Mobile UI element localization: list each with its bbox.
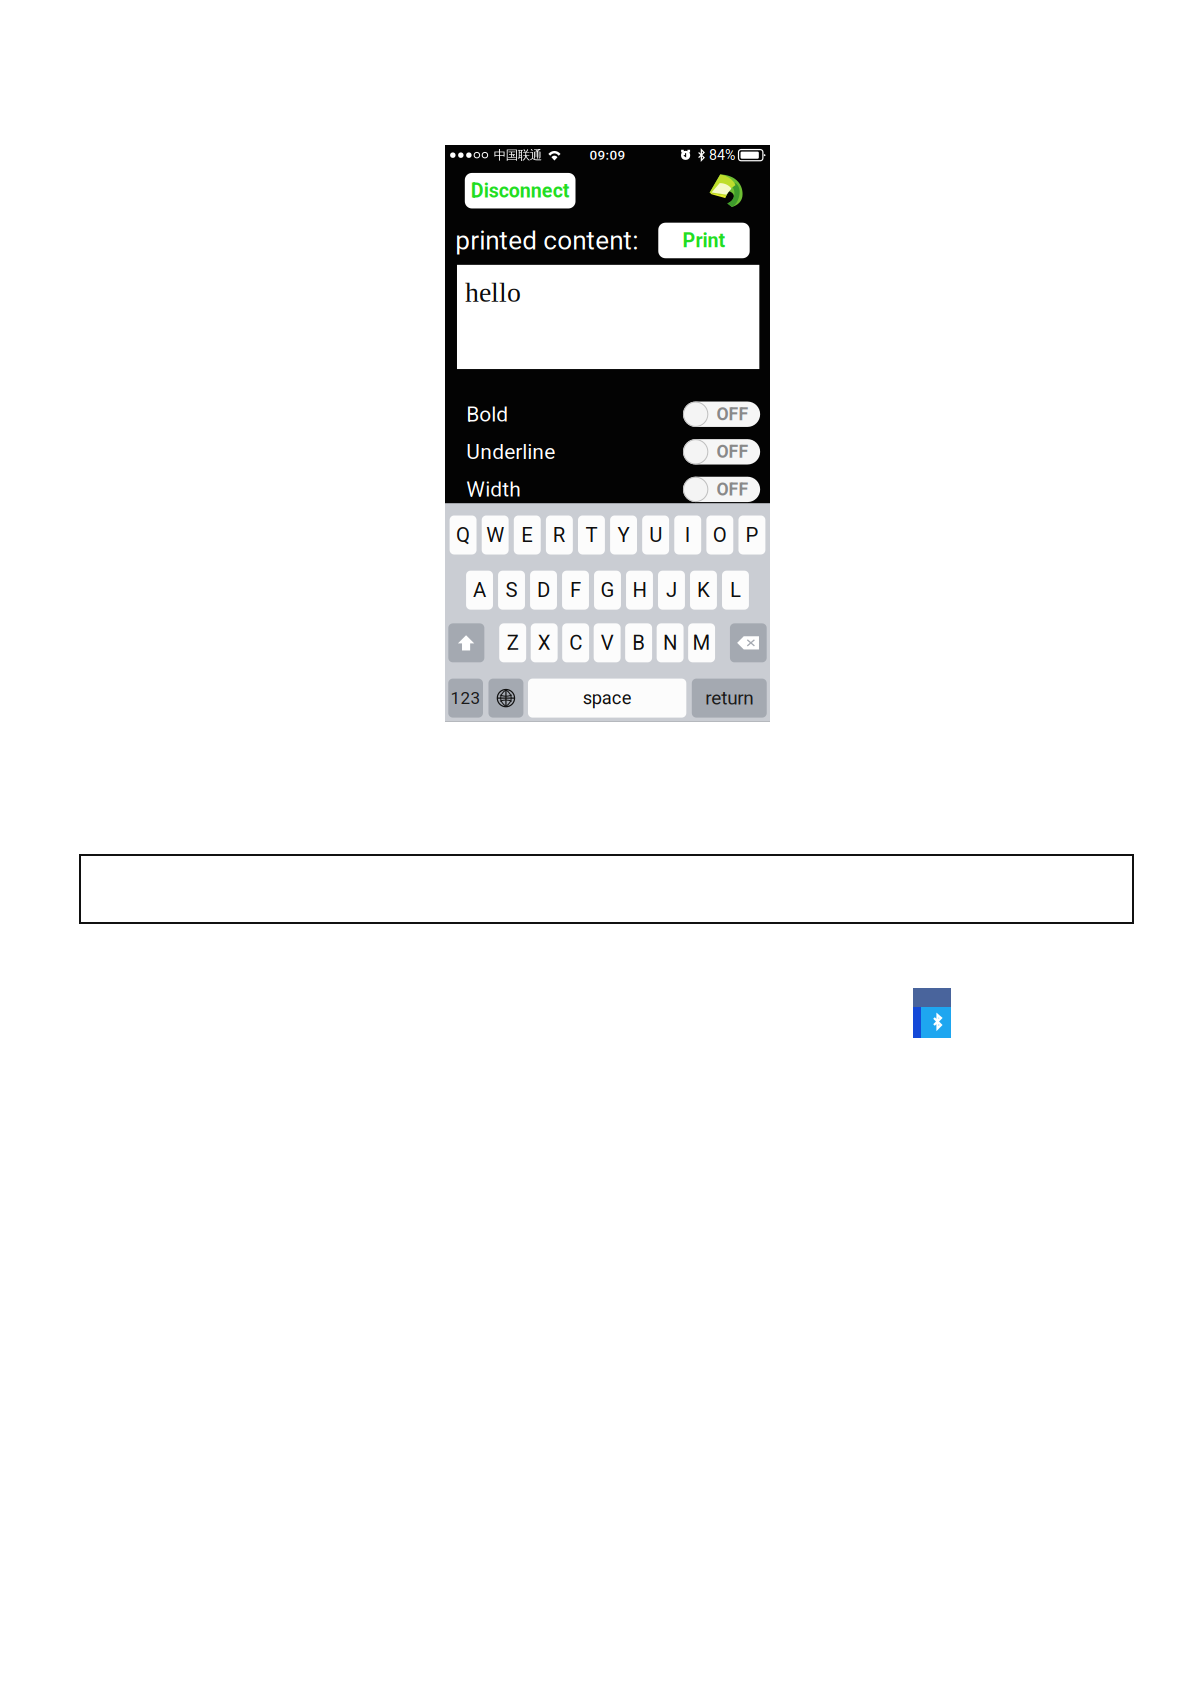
button[interactable]: V bbox=[594, 623, 621, 662]
button[interactable]: Off bbox=[683, 401, 760, 427]
staticText: I bbox=[685, 523, 691, 547]
button[interactable]: Delete bbox=[730, 623, 767, 662]
staticText: T bbox=[585, 523, 597, 547]
staticText: return bbox=[705, 687, 753, 709]
staticText: OFF bbox=[716, 441, 748, 462]
staticText: L bbox=[730, 578, 741, 602]
button[interactable]: W bbox=[482, 515, 509, 554]
staticText: N bbox=[663, 631, 677, 655]
staticText: W bbox=[486, 523, 504, 547]
button[interactable]: J bbox=[658, 571, 685, 610]
button[interactable]: Next keyboard bbox=[488, 679, 523, 718]
staticText: O bbox=[713, 523, 727, 547]
button[interactable]: 123 bbox=[448, 679, 483, 718]
button[interactable]: D bbox=[530, 571, 557, 610]
button[interactable]: space bbox=[528, 679, 686, 718]
button[interactable]: X bbox=[531, 623, 558, 662]
staticText: B bbox=[632, 631, 645, 655]
staticText: Underline bbox=[466, 439, 555, 464]
button[interactable]: O bbox=[706, 515, 733, 554]
staticText: F bbox=[570, 578, 581, 602]
staticText: Disconnect bbox=[471, 179, 570, 202]
staticText: X bbox=[538, 631, 551, 655]
staticText: J bbox=[666, 578, 677, 602]
staticText: Print bbox=[682, 229, 725, 252]
button[interactable]: Q bbox=[450, 515, 476, 554]
staticText: U bbox=[649, 523, 662, 547]
staticText: hello bbox=[465, 277, 521, 308]
button[interactable]: Z bbox=[499, 623, 526, 662]
button[interactable]: I bbox=[674, 515, 701, 554]
button[interactable]: Disconnect bbox=[465, 173, 575, 208]
button[interactable]: A bbox=[466, 571, 493, 610]
staticText: V bbox=[601, 631, 614, 655]
button[interactable]: E bbox=[514, 515, 541, 554]
button[interactable]: L bbox=[722, 571, 749, 610]
button[interactable]: S bbox=[498, 571, 525, 610]
button[interactable]: return bbox=[692, 679, 767, 718]
staticText: Y bbox=[617, 523, 629, 547]
staticText: D bbox=[537, 578, 550, 602]
button[interactable]: K bbox=[690, 571, 717, 610]
staticText: Z bbox=[507, 631, 519, 655]
button[interactable]: H bbox=[626, 571, 653, 610]
staticText: S bbox=[505, 578, 517, 602]
staticText: OFF bbox=[716, 479, 748, 500]
staticText: Bold bbox=[466, 402, 508, 426]
button[interactable]: F bbox=[562, 571, 589, 610]
staticText: 84% bbox=[709, 147, 735, 163]
staticText: G bbox=[600, 578, 614, 602]
staticText: 中国联通 bbox=[494, 147, 542, 163]
button[interactable]: Off bbox=[683, 439, 760, 464]
staticText: H bbox=[632, 578, 646, 602]
staticText: OFF bbox=[716, 404, 748, 424]
staticText: K bbox=[697, 578, 710, 602]
staticText: C bbox=[569, 631, 582, 655]
button[interactable]: Share bbox=[709, 174, 746, 207]
button[interactable]: R bbox=[546, 515, 573, 554]
button[interactable]: Shift bbox=[448, 623, 484, 662]
staticText: M bbox=[693, 631, 711, 655]
button[interactable]: Print bbox=[658, 223, 750, 258]
staticText: Q bbox=[456, 523, 470, 547]
button[interactable]: Off bbox=[683, 477, 760, 502]
staticText: printed content: bbox=[455, 225, 638, 256]
staticText: 123 bbox=[451, 688, 481, 708]
button[interactable]: Y bbox=[610, 515, 637, 554]
button[interactable]: N bbox=[657, 623, 684, 662]
button[interactable]: T bbox=[578, 515, 605, 554]
button[interactable]: P bbox=[738, 515, 765, 554]
button[interactable]: M bbox=[688, 623, 715, 662]
staticText: A bbox=[473, 578, 486, 602]
staticText: space bbox=[583, 687, 632, 709]
staticText: 09:09 bbox=[589, 147, 625, 163]
staticText: Width bbox=[466, 477, 521, 502]
staticText: P bbox=[745, 523, 758, 547]
button[interactable]: C bbox=[562, 623, 589, 662]
button[interactable]: G bbox=[594, 571, 621, 610]
button[interactable]: B bbox=[625, 623, 652, 662]
button[interactable]: U bbox=[642, 515, 669, 554]
staticText: E bbox=[521, 523, 533, 547]
staticText: R bbox=[553, 523, 566, 547]
